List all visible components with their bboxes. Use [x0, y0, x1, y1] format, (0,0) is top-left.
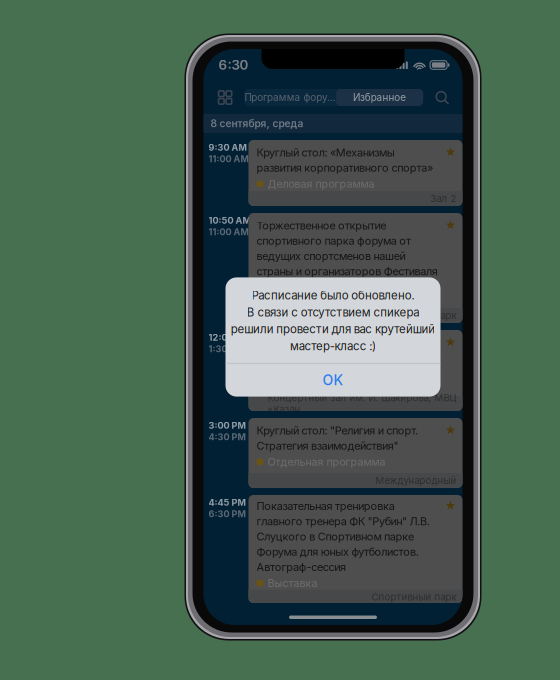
staticText: 4:45 PM: [208, 497, 245, 508]
staticText: 11:00 AM: [208, 153, 248, 164]
staticText: 11:00 AM: [208, 226, 248, 237]
button[interactable]: 9:30 AM: [203, 140, 462, 206]
staticText: Показательная тренировка главного тренер…: [256, 499, 430, 574]
staticText: 12:00 PM: [208, 332, 249, 343]
button[interactable]: Избранное: [336, 89, 423, 106]
staticText: Деловая программа: [267, 177, 374, 190]
staticText: Спортивный парк: [371, 591, 456, 603]
staticText: Деловая программа: [267, 281, 374, 294]
staticText: Круглый стол: "Религия и спорт. Стратеги…: [256, 424, 418, 452]
staticText: Отдельная программа: [267, 455, 385, 468]
staticText: OK: [322, 372, 343, 388]
staticText: Международный: [375, 475, 456, 486]
staticText: 6:30: [218, 57, 248, 73]
staticText: В связи с отсутствием спикера: [247, 305, 419, 319]
staticText: Выставка: [267, 577, 317, 589]
button[interactable]: Search: [431, 87, 452, 108]
staticText: 1:30 PM: [208, 343, 243, 354]
staticText: Показательные выступления и мастер-класс…: [256, 336, 412, 380]
staticText: Программа фору...: [244, 91, 336, 103]
button[interactable]: Grid view: [214, 87, 236, 108]
staticText: 10:50 AM: [208, 215, 250, 226]
staticText: мастер-класс :): [290, 339, 376, 353]
staticText: Избранное: [353, 91, 406, 103]
staticText: Расписание было обновлено.: [251, 288, 414, 302]
staticText: Круглый стол: «Механизмы развития корпор…: [256, 146, 433, 174]
staticText: 4:30 PM: [208, 431, 245, 442]
button[interactable]: 4:45 PM: [203, 495, 462, 603]
staticText: 8 сентября, среда: [210, 117, 303, 130]
staticText: 9:30 AM: [208, 142, 246, 153]
button[interactable]: 10:50 AM: [203, 213, 462, 323]
staticText: Деловая программа: [267, 383, 374, 396]
staticText: Концертный зал им. И. Шакирова, МВЦ «Каз…: [267, 392, 456, 415]
button[interactable]: Программа фору...: [244, 89, 336, 106]
button[interactable]: 3:00 PM: [203, 418, 462, 488]
staticText: решили провести для вас крутейший: [231, 322, 435, 336]
staticText: Спортивный парк: [371, 310, 456, 321]
staticText: 6:30 PM: [208, 508, 245, 519]
button[interactable]: 12:00 PM: [203, 330, 462, 411]
staticText: Торжественное открытие спортивного парка…: [256, 219, 438, 278]
button[interactable]: OK: [225, 364, 440, 397]
staticText: 3:00 PM: [208, 420, 245, 431]
staticText: Зал 2: [430, 193, 456, 204]
